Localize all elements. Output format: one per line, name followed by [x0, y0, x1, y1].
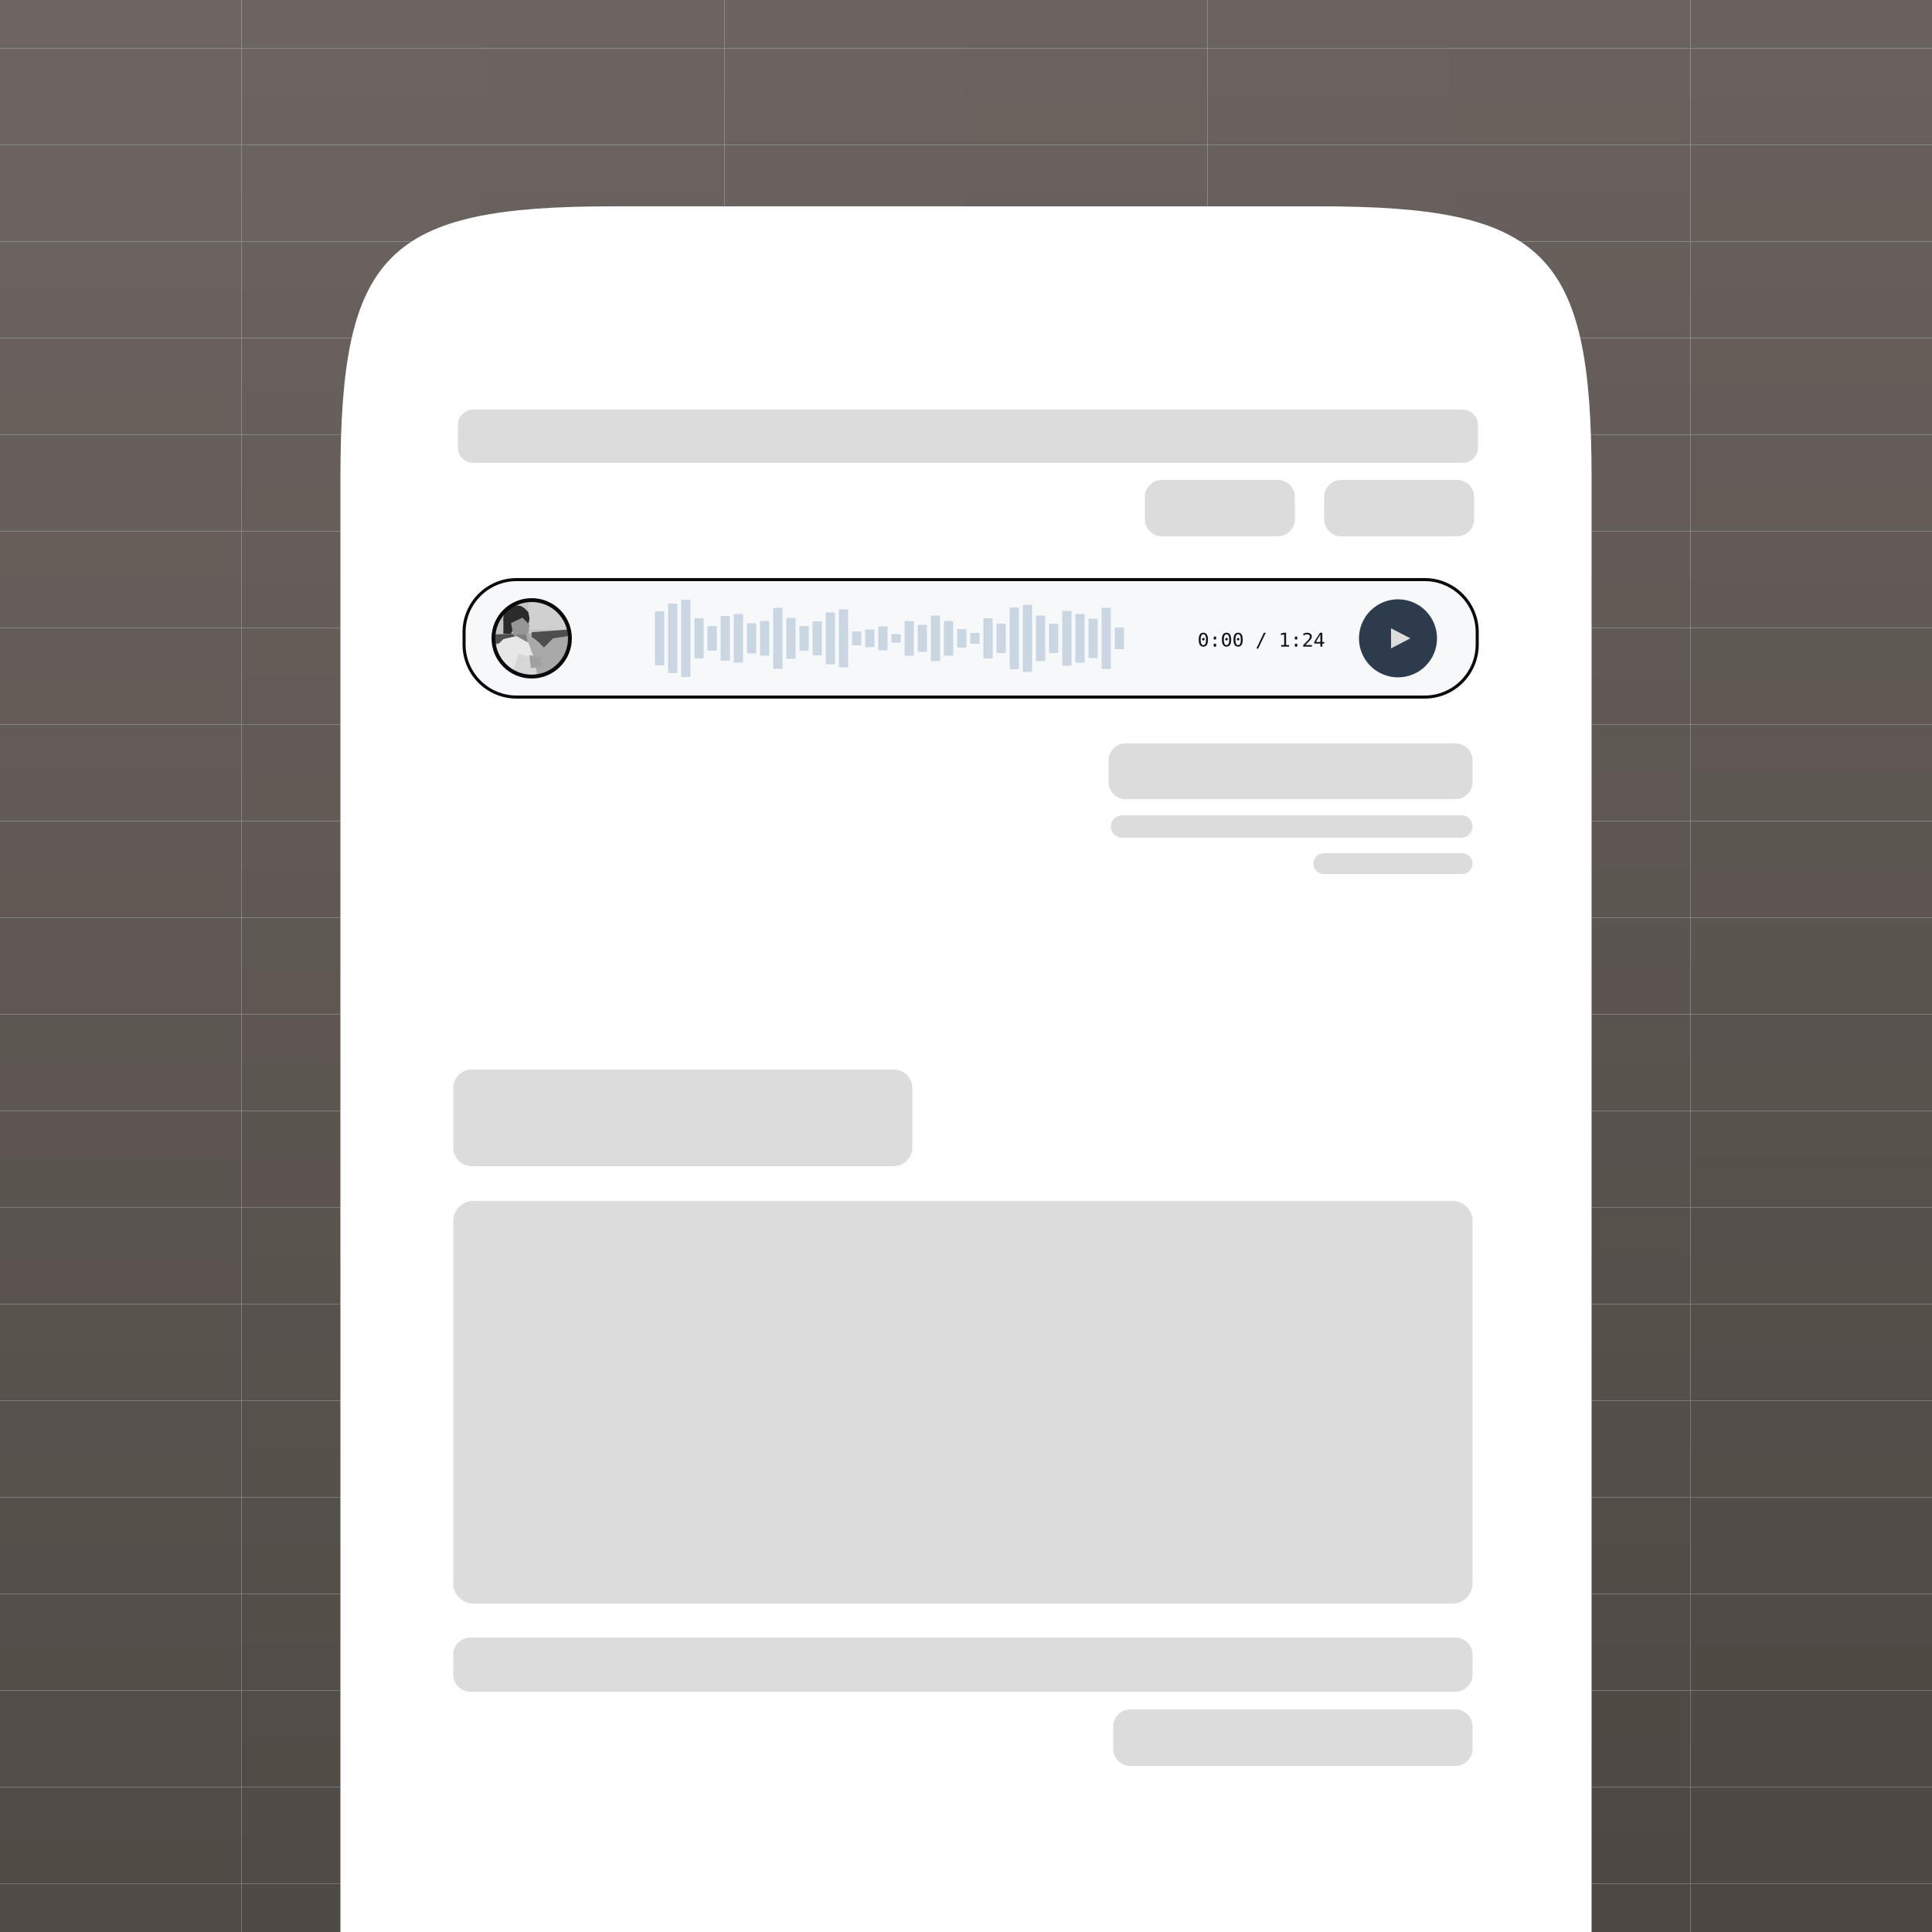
staticText: 0:00 / 1:24 — [1197, 629, 1325, 651]
button[interactable]: Play voice message — [1359, 599, 1437, 677]
button[interactable]: 0:00 / 1:24 — [464, 580, 1477, 697]
